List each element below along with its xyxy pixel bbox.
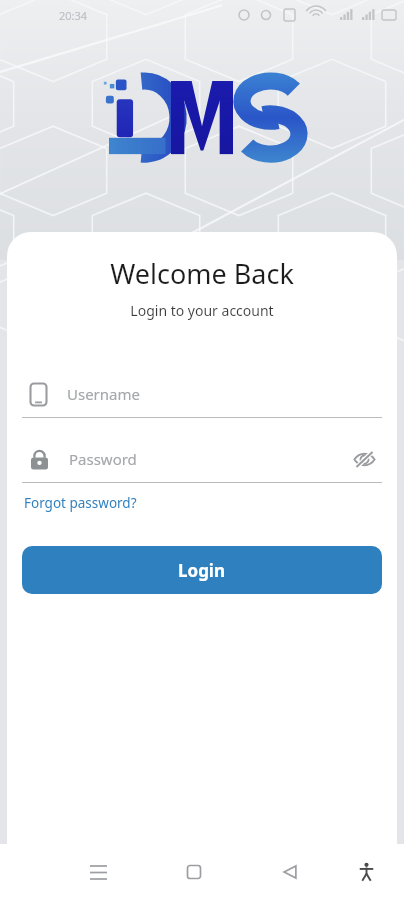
staticText: Username — [67, 384, 140, 404]
staticText: Password — [69, 449, 137, 469]
staticText: Login — [178, 559, 226, 582]
staticText: Welcome Back — [7, 255, 397, 292]
button[interactable]: Recent apps — [78, 852, 118, 892]
button[interactable]: Home — [174, 852, 214, 892]
button[interactable]: Back — [270, 852, 310, 892]
button[interactable]: Accessibility — [346, 852, 386, 892]
button[interactable]: Show password — [346, 441, 382, 477]
button[interactable]: Forgot password? — [22, 491, 139, 515]
button[interactable]: Password — [22, 438, 382, 480]
staticText: Login to your account — [7, 301, 397, 320]
button[interactable]: Username — [22, 373, 382, 415]
button[interactable]: Login — [22, 546, 382, 594]
staticText: 20:34 — [59, 8, 88, 23]
staticText: Forgot password? — [24, 494, 137, 512]
